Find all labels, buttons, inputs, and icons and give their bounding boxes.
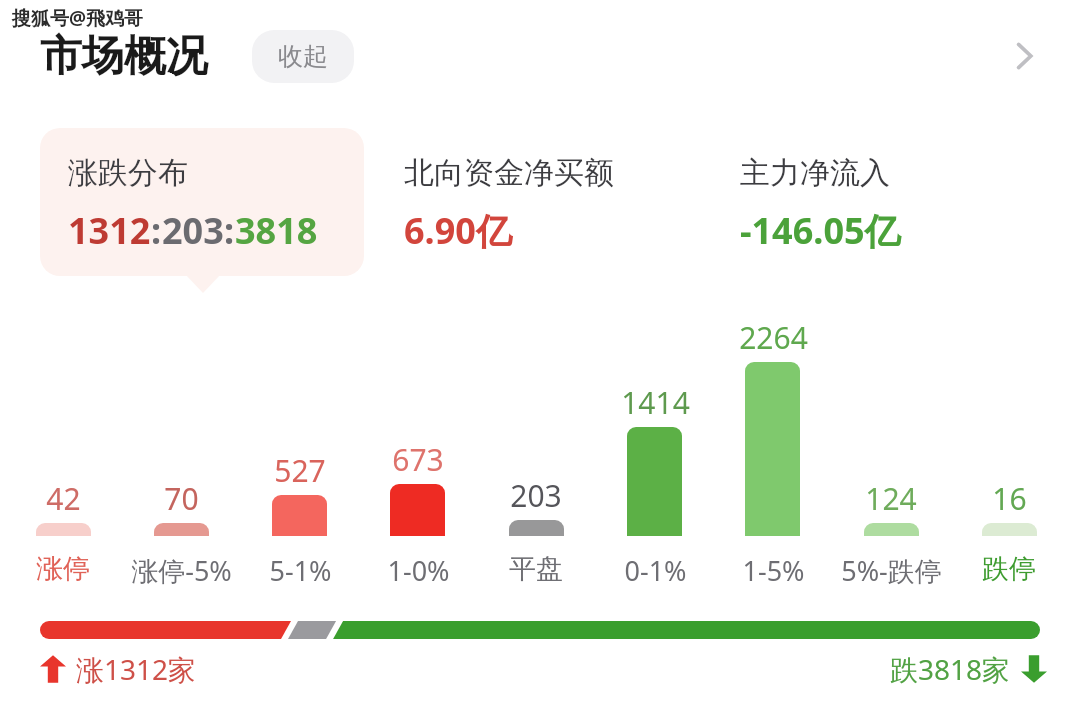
staticText: 5%-跌停 [841, 552, 942, 589]
staticText: 平盘 [509, 552, 563, 586]
staticText: 203 [162, 206, 224, 255]
staticText: 1312 [68, 206, 151, 255]
staticText: 1414 [621, 382, 690, 423]
button[interactable]: More [996, 28, 1052, 84]
staticText: 搜狐号@飛鸡哥 [12, 5, 144, 31]
button[interactable]: 涨1312家 [40, 650, 197, 688]
staticText: 涨停-5% [131, 552, 232, 589]
staticText: 6.90亿 [404, 206, 512, 255]
staticText: 收起 [278, 41, 328, 72]
staticText: 42 [46, 478, 81, 519]
staticText: 涨跌分布 [68, 154, 188, 192]
button[interactable]: 北向资金净买额 [376, 128, 700, 276]
staticText: 203 [510, 475, 562, 516]
button[interactable]: 收起 [252, 30, 354, 83]
staticText: 124 [865, 478, 917, 519]
staticText: 涨停 [36, 552, 90, 586]
staticText: 涨1312家 [76, 650, 197, 688]
button[interactable]: 主力净流入 [712, 128, 1036, 276]
staticText: 1-0% [387, 552, 450, 589]
staticText: 1-5% [742, 552, 805, 589]
staticText: 673 [392, 439, 444, 480]
staticText: 527 [274, 450, 326, 491]
staticText: 跌3818家 [890, 650, 1011, 688]
staticText: 70 [164, 478, 199, 519]
staticText: 市场概况 [40, 30, 208, 83]
staticText: 主力净流入 [740, 154, 890, 192]
button[interactable]: 涨跌分布 [40, 128, 364, 276]
staticText: 3818 [235, 206, 318, 255]
staticText: 0-1% [624, 552, 687, 589]
staticText: : [224, 206, 235, 255]
staticText: 跌停 [982, 552, 1036, 586]
staticText: 5-1% [269, 552, 332, 589]
staticText: 北向资金净买额 [404, 154, 614, 192]
staticText: 2264 [739, 317, 808, 358]
staticText: -146.05亿 [740, 206, 901, 255]
staticText: : [151, 206, 162, 255]
button[interactable]: 跌3818家 [890, 650, 1047, 688]
staticText: 16 [992, 478, 1027, 519]
